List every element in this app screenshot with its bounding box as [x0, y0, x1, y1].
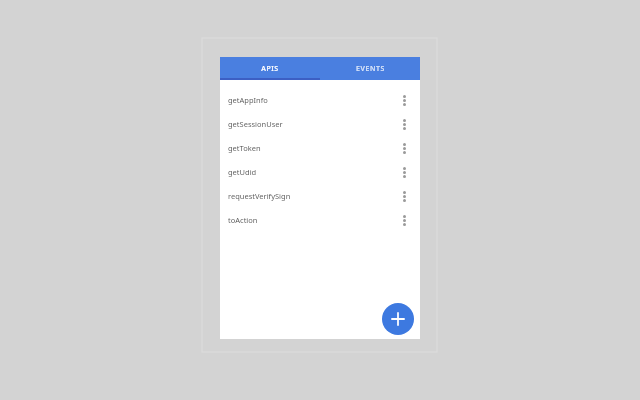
- button[interactable]: getSessionUser: [220, 112, 420, 136]
- staticText: EVENTS: [356, 64, 385, 74]
- button[interactable]: getUdid: [220, 160, 420, 184]
- button[interactable]: More options for getSessionUser: [392, 112, 416, 136]
- button[interactable]: getToken: [220, 136, 420, 160]
- button[interactable]: APIS: [220, 57, 320, 80]
- button[interactable]: More options for getAppInfo: [392, 88, 416, 112]
- button[interactable]: More options for toAction: [392, 208, 416, 232]
- staticText: getToken: [228, 143, 261, 153]
- staticText: toAction: [228, 215, 258, 225]
- button[interactable]: More options for getUdid: [392, 160, 416, 184]
- button[interactable]: toAction: [220, 208, 420, 232]
- button[interactable]: EVENTS: [320, 57, 420, 80]
- staticText: APIS: [261, 64, 279, 74]
- staticText: requestVerifySign: [228, 191, 291, 201]
- button[interactable]: More options for requestVerifySign: [392, 184, 416, 208]
- button[interactable]: requestVerifySign: [220, 184, 420, 208]
- button[interactable]: Add: [382, 303, 414, 335]
- button[interactable]: More options for getToken: [392, 136, 416, 160]
- staticText: getUdid: [228, 167, 257, 177]
- staticText: getSessionUser: [228, 119, 283, 129]
- button[interactable]: getAppInfo: [220, 88, 420, 112]
- staticText: getAppInfo: [228, 95, 268, 105]
